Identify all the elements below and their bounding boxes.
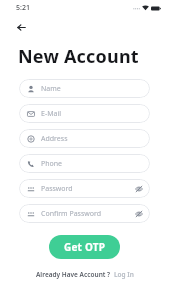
button[interactable]: Name	[19, 79, 150, 98]
staticText: 5:21	[16, 3, 30, 13]
button[interactable]: Back	[10, 16, 32, 38]
staticText: Already Have Account ?	[36, 270, 111, 279]
button[interactable]: Toggle password visibility	[134, 184, 143, 193]
staticText: Address	[41, 134, 68, 144]
button[interactable]: Password	[19, 179, 150, 198]
staticText: Get OTP	[64, 240, 106, 254]
button[interactable]: Confirm Password	[19, 204, 150, 223]
staticText: New Account	[18, 44, 139, 69]
staticText: Log In	[114, 270, 134, 279]
button[interactable]: Phone	[19, 154, 150, 173]
staticText: E-Mail	[41, 109, 62, 119]
staticText: Confirm Password	[41, 209, 102, 219]
button[interactable]: Get OTP	[49, 235, 120, 259]
staticText: Name	[41, 84, 61, 94]
button[interactable]: Toggle password visibility	[134, 209, 143, 218]
button[interactable]: Log In	[114, 270, 134, 279]
button[interactable]: Address	[19, 129, 150, 148]
button[interactable]: E-Mail	[19, 104, 150, 123]
staticText: Phone	[41, 159, 63, 169]
staticText: Password	[41, 184, 73, 194]
